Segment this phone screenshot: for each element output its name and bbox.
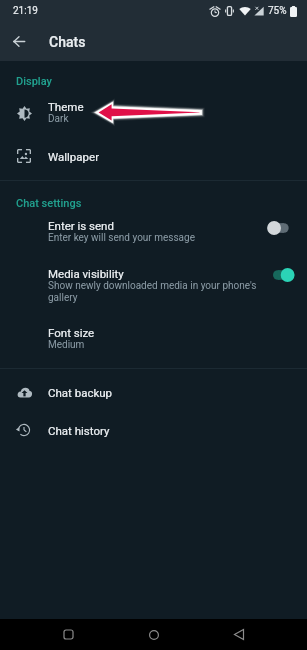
button[interactable]: Chat history	[0, 411, 307, 449]
staticText: Chat history	[48, 424, 110, 437]
button[interactable]: Navigate up	[0, 22, 38, 61]
staticText: 21:19	[13, 5, 38, 17]
button[interactable]: Font size	[0, 314, 307, 363]
button[interactable]: Media visibility, on	[266, 267, 295, 283]
button[interactable]: Back	[221, 619, 257, 650]
staticText: Chat backup	[48, 386, 113, 399]
button[interactable]: Media visibility	[0, 256, 307, 314]
staticText: Wallpaper	[48, 150, 100, 163]
staticText: Theme	[48, 100, 84, 113]
staticText: Enter key will send your message	[48, 232, 195, 244]
staticText: Dark	[48, 113, 69, 125]
button[interactable]: Theme	[0, 88, 307, 137]
button[interactable]: Recents	[50, 619, 86, 650]
staticText: Display	[16, 75, 52, 88]
button[interactable]: Enter is send	[0, 207, 307, 256]
button[interactable]: Chat backup	[0, 373, 307, 411]
staticText: Media visibility	[48, 267, 124, 280]
button[interactable]: Wallpaper	[0, 137, 307, 175]
staticText: Medium	[48, 339, 85, 351]
button[interactable]: Enter is send, off	[266, 220, 295, 236]
button[interactable]: Home	[136, 619, 172, 650]
staticText: Show newly downloaded media in your phon…	[48, 280, 260, 304]
staticText: 75%	[268, 5, 287, 17]
staticText: Font size	[48, 326, 95, 339]
staticText: Chats	[49, 34, 86, 50]
staticText: Chat settings	[16, 197, 82, 210]
staticText: Enter is send	[48, 219, 114, 232]
